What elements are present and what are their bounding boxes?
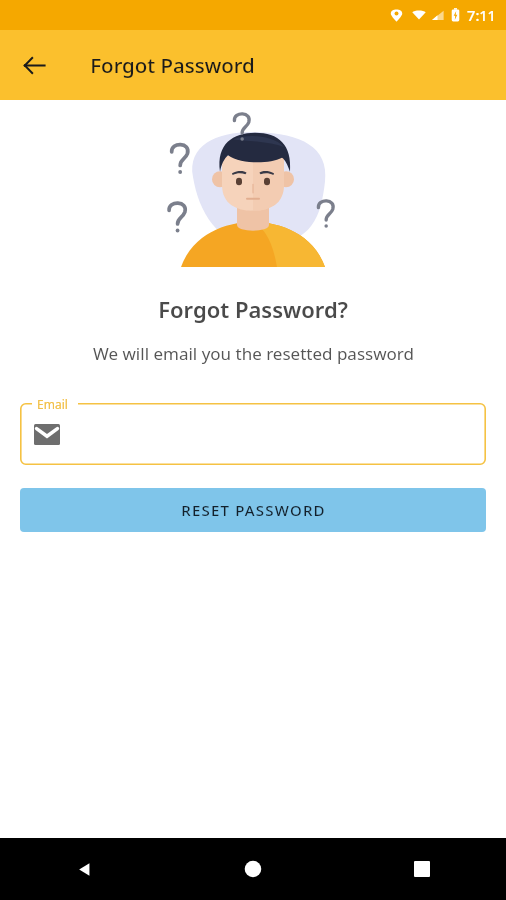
button[interactable]: Email bbox=[20, 397, 486, 465]
staticText: Forgot Password bbox=[90, 51, 255, 79]
staticText: RESET PASSWORD bbox=[181, 500, 326, 520]
staticText: Email bbox=[37, 396, 68, 412]
button[interactable]: RESET PASSWORD bbox=[20, 488, 486, 532]
button[interactable]: Home bbox=[168, 838, 337, 900]
button[interactable]: Back bbox=[10, 41, 58, 89]
button[interactable]: Recent apps bbox=[337, 838, 506, 900]
staticText: 7:11 bbox=[467, 5, 496, 25]
staticText: We will email you the resetted password bbox=[93, 342, 414, 365]
button[interactable]: Back bbox=[0, 838, 168, 900]
staticText: Forgot Password? bbox=[158, 294, 348, 324]
